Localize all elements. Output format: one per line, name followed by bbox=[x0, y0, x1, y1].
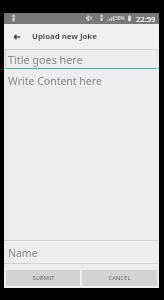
button[interactable]: CANCEL bbox=[82, 270, 157, 286]
staticText: 30% bbox=[115, 15, 125, 22]
staticText: Upload new Joke bbox=[32, 31, 97, 42]
staticText: Write Content here bbox=[8, 74, 102, 88]
staticText: Name bbox=[8, 246, 38, 260]
button[interactable]: Name bbox=[4, 241, 159, 264]
button[interactable]: Title goes here bbox=[4, 49, 159, 69]
staticText: CANCEL bbox=[108, 274, 131, 282]
button[interactable]: SUBMIT bbox=[6, 270, 80, 286]
button[interactable]: Back bbox=[4, 24, 31, 49]
button[interactable]: Write Content here bbox=[4, 69, 159, 241]
staticText: SUBMIT bbox=[32, 274, 55, 282]
staticText: 22:59 bbox=[136, 14, 156, 24]
staticText: Title goes here bbox=[8, 52, 83, 67]
